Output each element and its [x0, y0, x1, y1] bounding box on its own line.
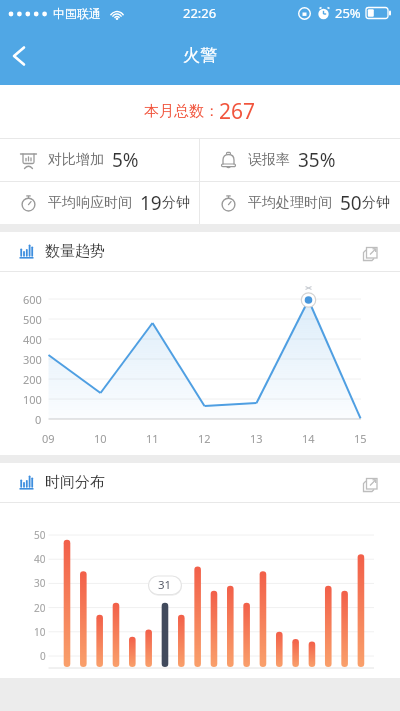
button[interactable]: 对比增加	[0, 139, 199, 181]
button[interactable]: 平均处理时间	[200, 182, 400, 224]
staticText: 误报率	[248, 151, 290, 169]
staticText: 平均处理时间	[248, 194, 332, 212]
staticText: 数量趋势	[45, 242, 105, 261]
staticText: 22:26	[183, 4, 217, 22]
staticText: 中国联通	[53, 6, 101, 21]
staticText: 火警	[183, 45, 217, 66]
staticText: 35%	[298, 147, 336, 173]
button[interactable]: 平均响应时间	[0, 182, 199, 224]
staticText: 5%	[112, 147, 139, 173]
button[interactable]	[358, 470, 384, 496]
button[interactable]	[358, 239, 384, 265]
staticText: 平均响应时间	[48, 194, 132, 212]
staticText: 19	[140, 190, 162, 216]
staticText: 对比增加	[48, 151, 104, 169]
staticText: 267	[219, 97, 256, 126]
staticText: 分钟	[162, 194, 190, 212]
button[interactable]	[0, 26, 38, 85]
staticText: 50	[340, 190, 362, 216]
staticText: 分钟	[362, 194, 390, 212]
staticText: 本月总数：	[144, 102, 219, 121]
staticText: 时间分布	[45, 473, 105, 492]
staticText: 25%	[335, 4, 361, 22]
button[interactable]: 误报率	[200, 139, 400, 181]
